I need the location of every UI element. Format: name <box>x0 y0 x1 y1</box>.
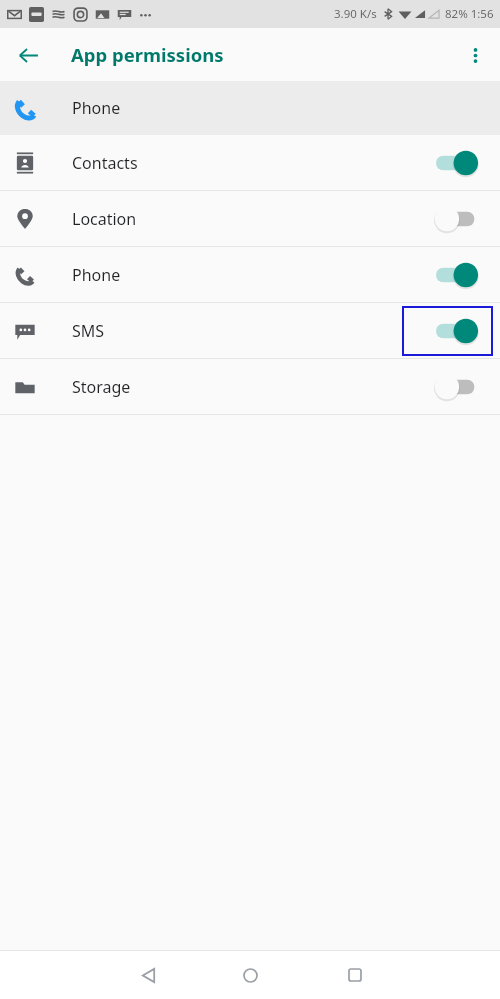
button[interactable]: Home <box>230 955 270 995</box>
staticText: 82% 1:56 <box>445 6 494 22</box>
button[interactable]: Back <box>8 35 48 75</box>
button[interactable]: Contacts <box>0 135 500 190</box>
staticText: SMS <box>72 320 402 342</box>
staticText: Storage <box>72 376 402 398</box>
staticText: Phone <box>72 97 121 119</box>
button[interactable]: Phone <box>0 81 500 135</box>
button[interactable]: Storage permission <box>402 362 493 412</box>
button[interactable]: Contacts permission <box>402 138 493 188</box>
button[interactable]: Storage <box>0 359 500 414</box>
staticText: 3.90 K/s <box>334 6 377 22</box>
button[interactable]: More options <box>455 35 495 75</box>
staticText: App permissions <box>71 42 224 67</box>
staticText: Phone <box>72 264 402 286</box>
staticText: Contacts <box>72 152 402 174</box>
button[interactable]: Back <box>128 955 168 995</box>
button[interactable]: Location <box>0 191 500 246</box>
button[interactable]: Phone <box>0 247 500 302</box>
button[interactable]: Recent apps <box>335 955 375 995</box>
button[interactable]: Location permission <box>402 194 493 244</box>
staticText: Location <box>72 208 402 230</box>
button[interactable]: SMS permission <box>402 306 493 356</box>
button[interactable]: SMS <box>0 303 500 358</box>
button[interactable]: Phone permission <box>402 250 493 300</box>
